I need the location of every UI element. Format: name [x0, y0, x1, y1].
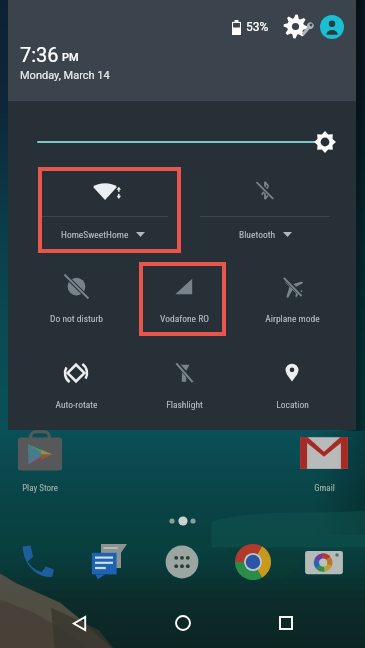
button[interactable]: Do not disturb — [22, 251, 130, 337]
button[interactable]: Flashlight — [130, 337, 238, 415]
button[interactable]: Auto-rotate — [22, 337, 130, 415]
button[interactable]: Messages — [89, 540, 129, 580]
button[interactable]: Play Store — [6, 430, 74, 494]
staticText: 7:36 — [20, 43, 59, 66]
staticText: Flashlight — [166, 399, 203, 410]
button[interactable]: Camera — [303, 543, 345, 583]
button[interactable]: Location — [238, 337, 346, 415]
button[interactable]: Airplane mode — [238, 251, 346, 337]
button[interactable]: Settings — [284, 14, 316, 40]
button[interactable]: Vodafone RO — [130, 251, 238, 337]
staticText: Play Store — [22, 483, 58, 494]
button[interactable]: Chrome — [232, 541, 274, 583]
button[interactable]: HomeSweetHome — [22, 165, 184, 251]
staticText: Vodafone RO — [160, 313, 209, 324]
button[interactable]: Bluetooth — [184, 165, 346, 251]
staticText: PM — [62, 51, 79, 64]
staticText: Auto-rotate — [55, 399, 98, 410]
staticText: Gmail — [314, 483, 335, 494]
button[interactable]: All apps — [162, 542, 202, 582]
button[interactable]: Recent apps — [262, 599, 310, 647]
staticText: 53% — [246, 20, 269, 34]
button[interactable]: User profile — [320, 15, 344, 39]
staticText: Monday, March 14 — [20, 69, 110, 82]
staticText: Airplane mode — [265, 313, 320, 324]
staticText: Bluetooth — [239, 229, 276, 240]
button[interactable]: Home — [159, 599, 207, 647]
staticText: Do not disturb — [50, 313, 103, 324]
button[interactable]: Phone — [17, 540, 57, 580]
button[interactable]: Gmail — [290, 430, 358, 494]
staticText: HomeSweetHome — [61, 229, 129, 240]
staticText: Location — [276, 399, 309, 410]
button[interactable]: Back — [55, 599, 103, 647]
